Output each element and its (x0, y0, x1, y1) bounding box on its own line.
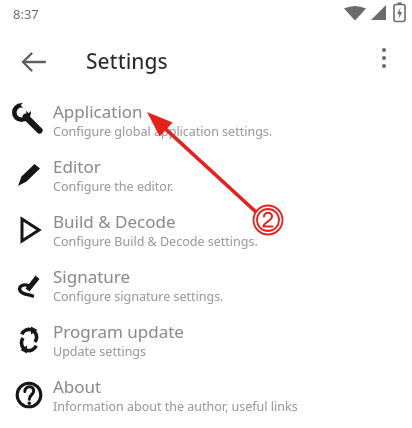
staticText: Configure signature settings. (53, 288, 224, 305)
staticText: Application (53, 100, 143, 123)
staticText: Signature (53, 265, 131, 288)
staticText: Configure global application settings. (53, 123, 273, 140)
staticText: Build & Decode (53, 210, 176, 233)
staticText: 8:37 (13, 5, 39, 23)
button[interactable]: Program update (0, 316, 412, 371)
button[interactable]: Application (0, 96, 412, 151)
staticText: Configure Build & Decode settings. (53, 233, 258, 250)
button[interactable]: Editor (0, 151, 412, 206)
button[interactable]: More options (364, 38, 404, 78)
staticText: Information about the author, useful lin… (53, 398, 298, 415)
button[interactable]: Back (10, 38, 58, 86)
button[interactable]: Build & Decode (0, 206, 412, 261)
staticText: Configure the editor. (53, 178, 174, 195)
staticText: Editor (53, 155, 101, 178)
staticText: Update settings (53, 343, 147, 360)
button[interactable]: About (0, 371, 412, 426)
staticText: Program update (53, 320, 184, 343)
staticText: About (53, 375, 102, 398)
staticText: Settings (86, 47, 168, 76)
button[interactable]: Signature (0, 261, 412, 316)
